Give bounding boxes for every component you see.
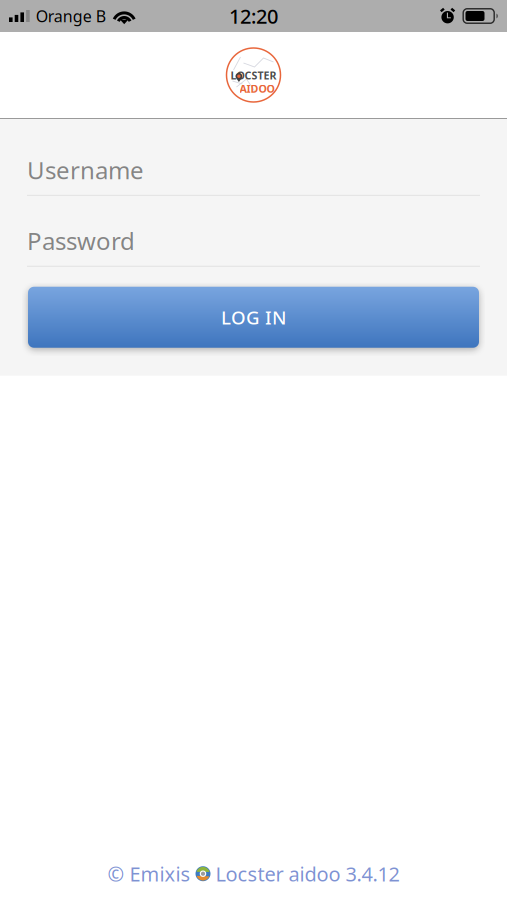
staticText: Orange B [36,5,106,27]
staticText: LOG IN [221,305,286,330]
staticText: © Emixis [107,860,190,887]
staticText: AIDOO [239,81,274,96]
staticText: Password [27,225,135,257]
staticText: LOCSTER [230,68,276,82]
staticText: Locster aidoo 3.4.12 [215,860,399,887]
staticText: 12:20 [229,3,278,29]
staticText: Username [27,154,144,186]
button[interactable]: LOG IN [28,287,479,348]
